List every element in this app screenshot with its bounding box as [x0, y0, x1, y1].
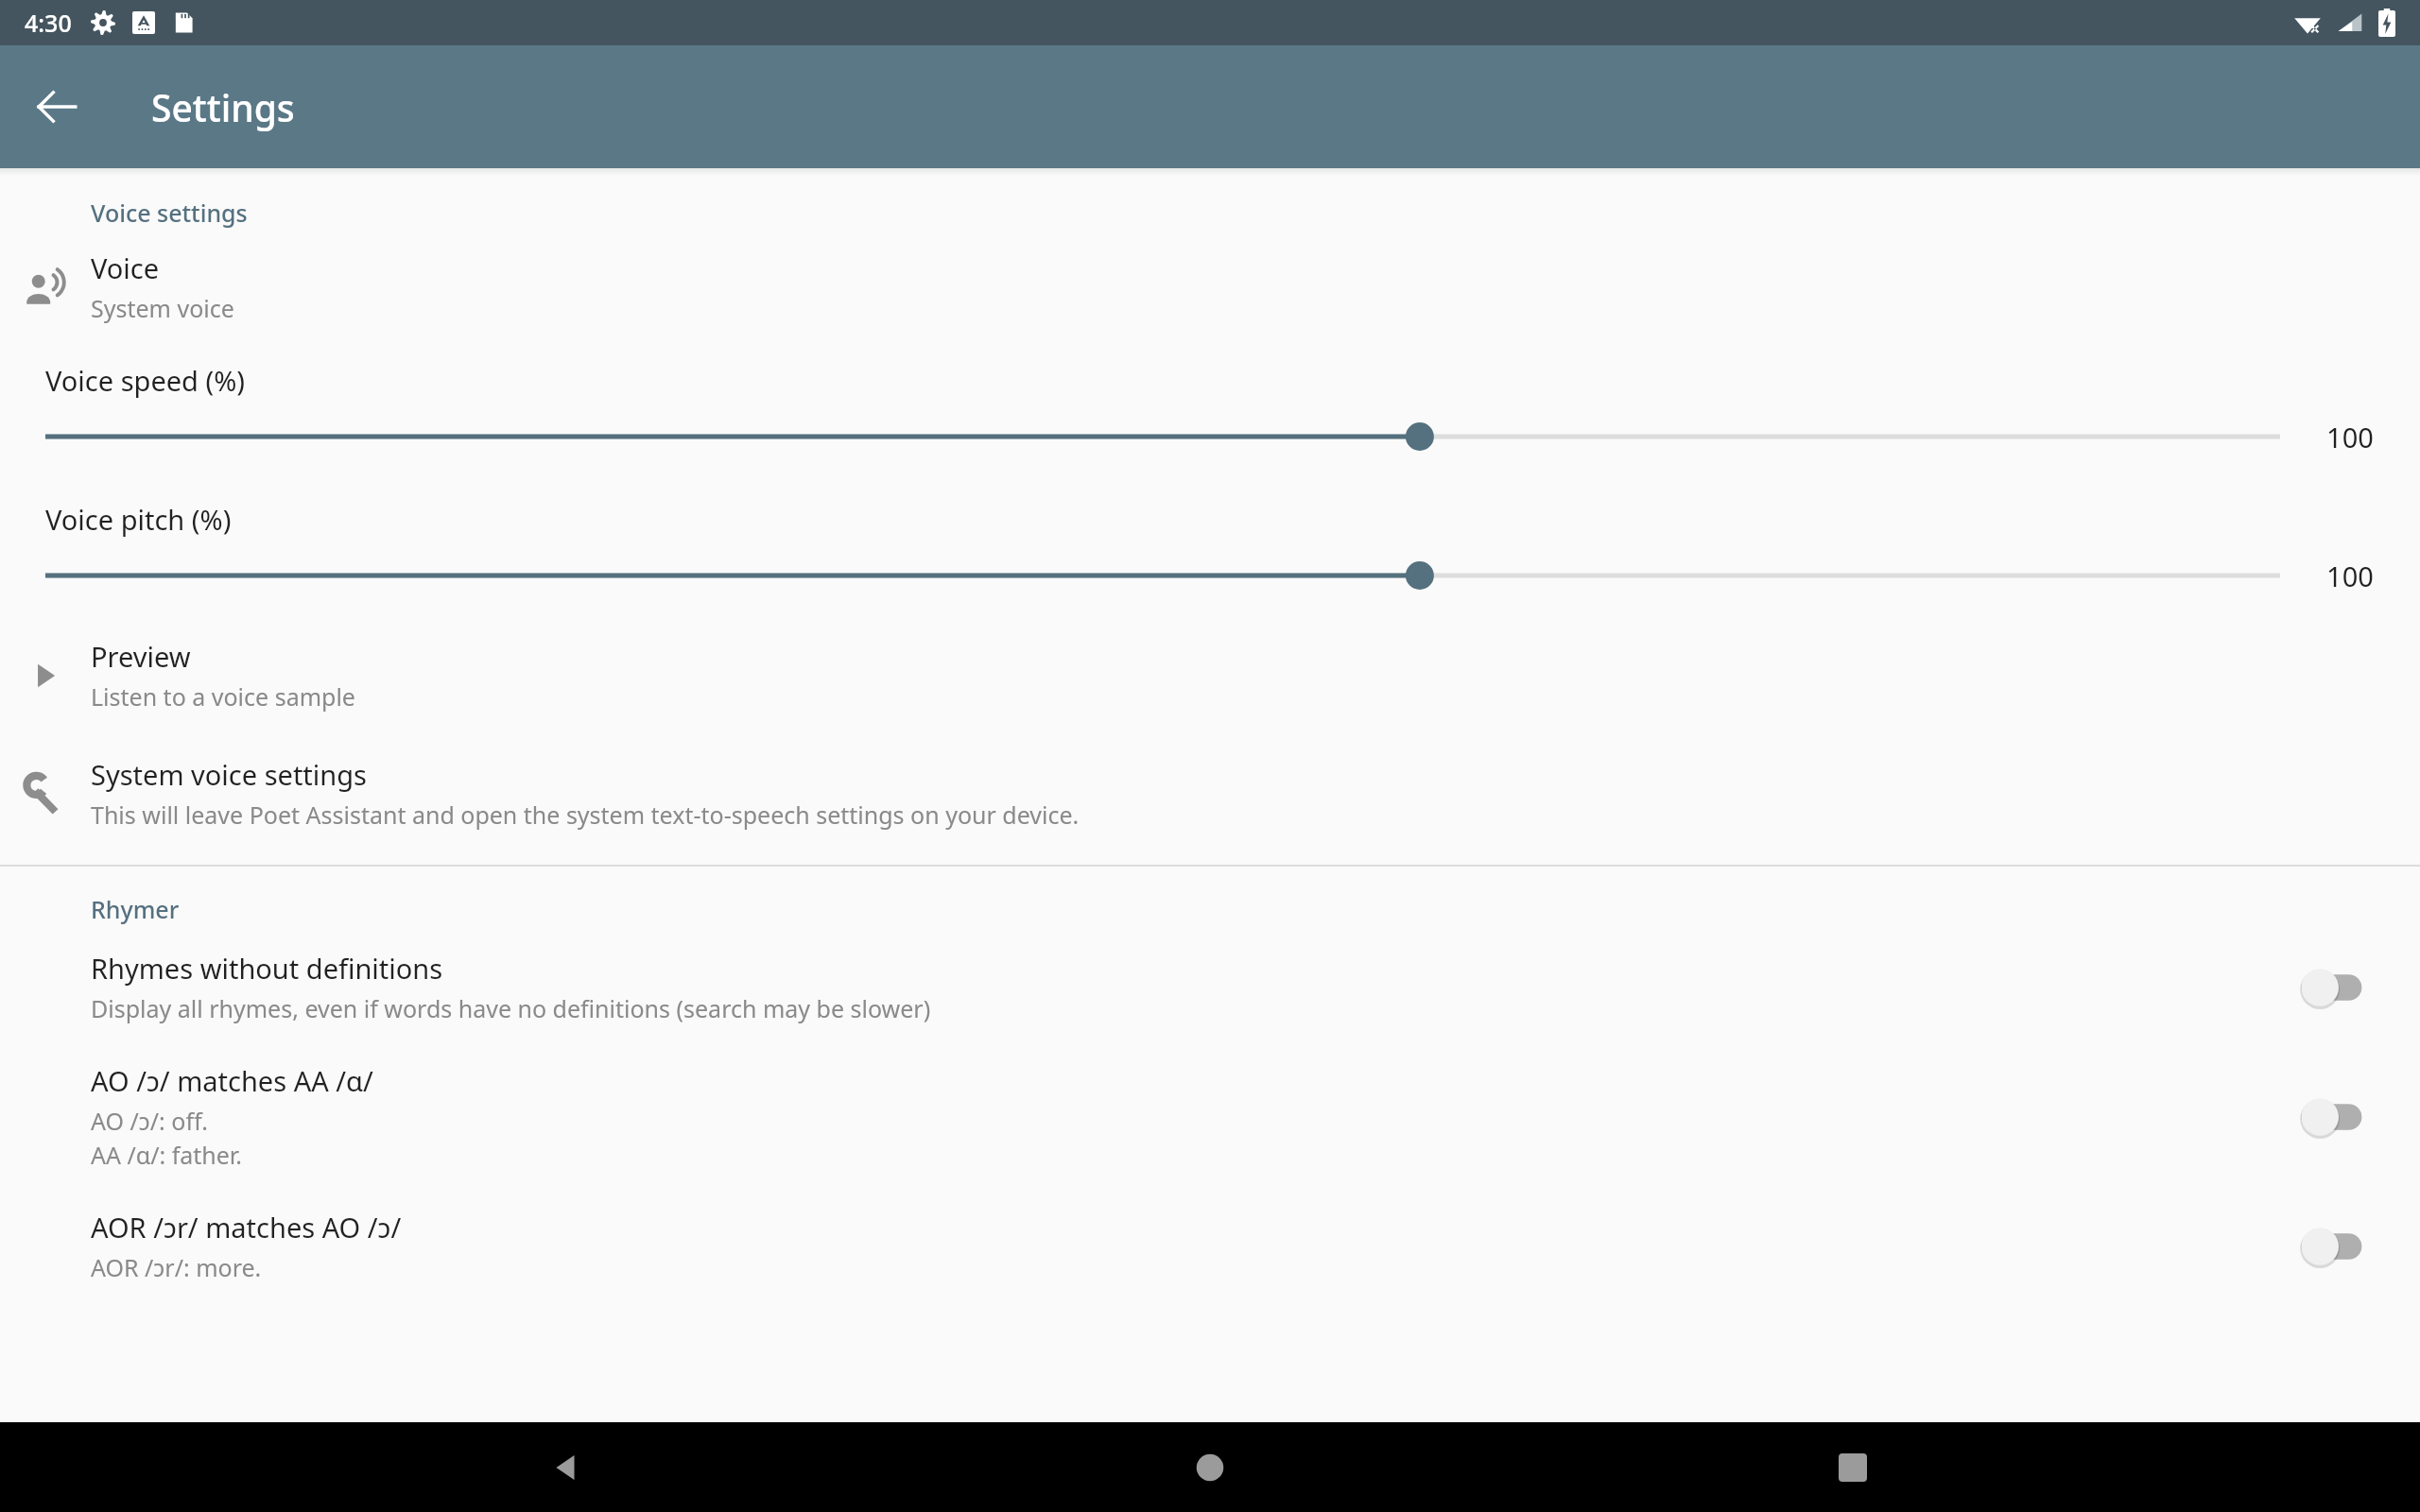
staticText: 100 [2326, 419, 2374, 455]
button[interactable]: System voice settings [0, 750, 2420, 836]
staticText: System voice [91, 292, 234, 324]
staticText: AOR /ɔr/ matches AO /ɔ/ [91, 1209, 402, 1246]
button[interactable]: AO /ɔ/ matches AA /ɑ/ [2295, 1089, 2371, 1145]
button[interactable]: Rhymes without definitions [0, 946, 2420, 1028]
staticText: AOR /ɔr/: more. [91, 1251, 262, 1283]
staticText: AO /ɔ/: off. [91, 1105, 208, 1137]
button[interactable]: Voice pitch (%) [0, 501, 2420, 594]
button[interactable]: Voice speed (%) [0, 362, 2420, 455]
button[interactable]: Preview [0, 632, 2420, 718]
staticText: Voice pitch (%) [45, 501, 232, 538]
staticText: Rhymes without definitions [91, 950, 443, 987]
staticText: Preview [91, 638, 191, 675]
staticText: 100 [2326, 558, 2374, 594]
staticText: Voice settings [91, 197, 248, 229]
staticText: System voice settings [91, 756, 367, 793]
staticText: Voice [91, 249, 160, 286]
button[interactable]: AO /ɔ/ matches AA /ɑ/ [0, 1058, 2420, 1175]
button[interactable]: AOR /ɔr/ matches AO /ɔ/ [0, 1205, 2420, 1287]
staticText: Listen to a voice sample [91, 680, 355, 713]
staticText: Settings [151, 82, 295, 132]
button[interactable]: Home [1134, 1422, 1286, 1512]
staticText: 4:30 [25, 7, 72, 39]
button[interactable]: Back [492, 1422, 643, 1512]
staticText: AA /ɑ/: father. [91, 1139, 242, 1171]
staticText: Display all rhymes, even if words have n… [91, 992, 931, 1024]
button[interactable]: Back [23, 73, 91, 141]
staticText: Rhymer [91, 893, 180, 925]
button[interactable]: Voice [0, 244, 2420, 330]
staticText: AO /ɔ/ matches AA /ɑ/ [91, 1062, 373, 1099]
button[interactable]: Recent apps [1777, 1422, 1928, 1512]
staticText: This will leave Poet Assistant and open … [91, 799, 1080, 831]
button[interactable]: AOR /ɔr/ matches AO /ɔ/ [2295, 1218, 2371, 1275]
button[interactable]: Rhymes without definitions [2295, 959, 2371, 1016]
staticText: Voice speed (%) [45, 362, 245, 399]
